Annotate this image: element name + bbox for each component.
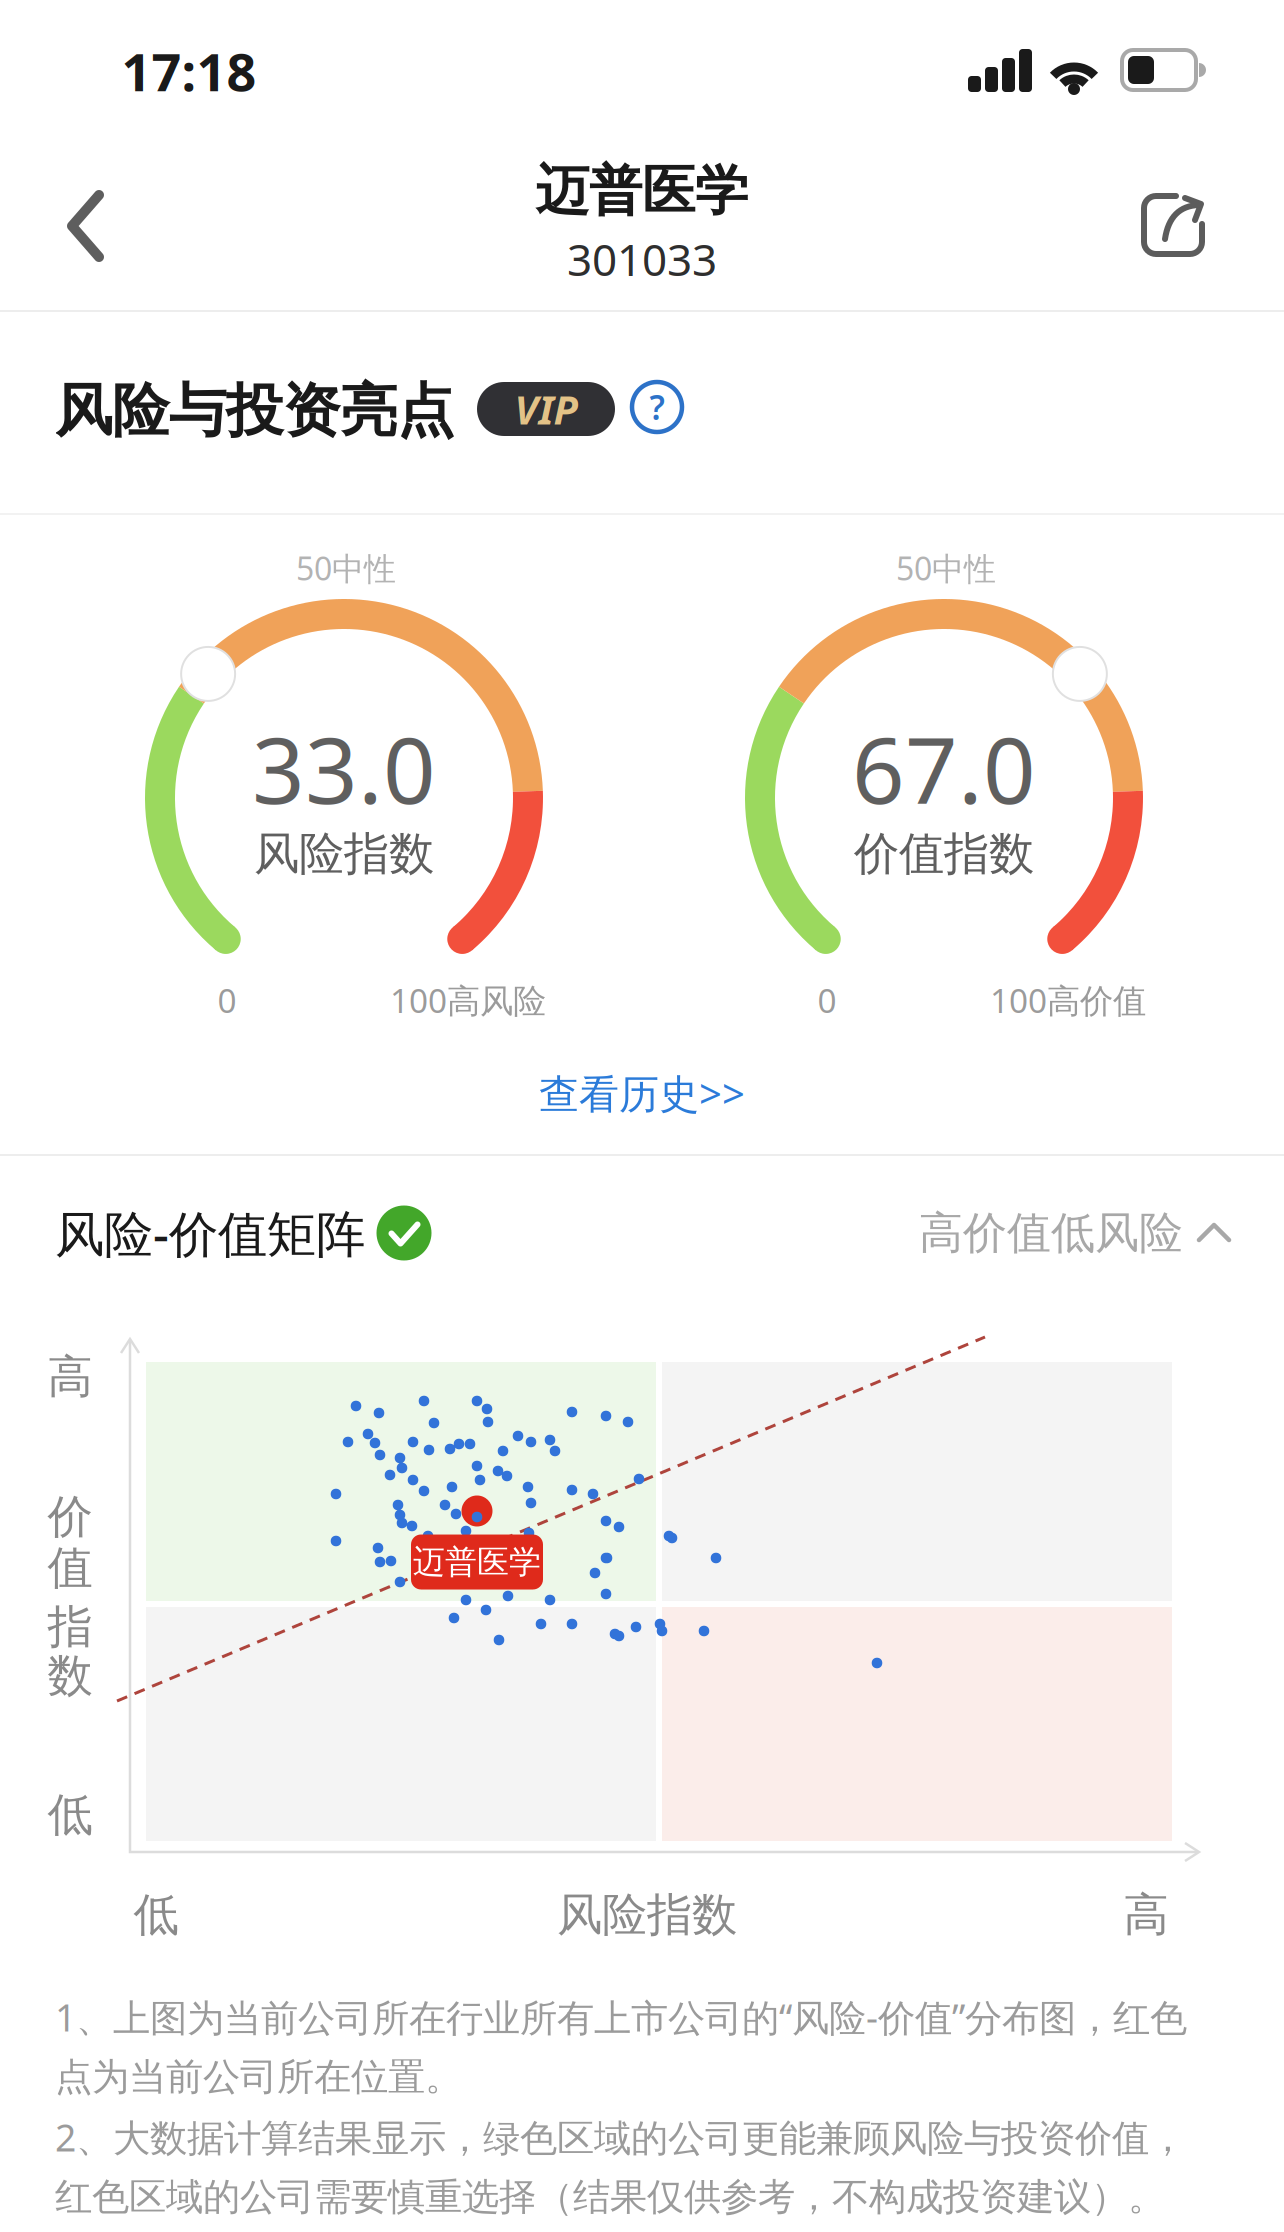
staticText: 数 [47, 1648, 92, 1704]
staticText: 高 [47, 1349, 92, 1405]
staticText: 2、大数据计算结果显示，绿色区域的公司更能兼顾风险与投资价值， [55, 2112, 1186, 2162]
staticText: 1、上图为当前公司所在行业所有上市公司的“风险-价值”分布图，红色 [55, 1992, 1187, 2042]
button[interactable]: 查看历史>> [539, 1066, 745, 1119]
staticText: 0 [217, 978, 236, 1022]
staticText: ? [649, 385, 664, 429]
staticText: 价值指数 [854, 826, 1034, 882]
staticText: 风险指数 [254, 826, 434, 882]
staticText: 迈普医学 [413, 1542, 541, 1582]
staticText: 高 [1123, 1887, 1168, 1943]
staticText: 17:18 [121, 36, 256, 106]
button[interactable]: Back [67, 191, 105, 261]
staticText: 价 [47, 1489, 92, 1545]
button[interactable]: Help [630, 380, 684, 434]
button[interactable]: 收起 [919, 1206, 1231, 1260]
staticText: 风险指数 [557, 1887, 737, 1943]
staticText: 33.0 [252, 707, 436, 829]
staticText: 100高风险 [390, 978, 546, 1022]
staticText: 50中性 [896, 547, 996, 589]
staticText: 高价值低风险 [919, 1206, 1183, 1260]
staticText: 迈普医学 [536, 158, 748, 224]
button[interactable]: VIP [477, 382, 615, 436]
button[interactable]: Share [1143, 192, 1209, 258]
staticText: 点为当前公司所在位置。 [55, 2054, 462, 2100]
staticText: 301033 [567, 230, 717, 288]
staticText: 指 [47, 1599, 92, 1655]
staticText: 值 [47, 1540, 92, 1596]
staticText: 100高价值 [990, 978, 1146, 1022]
staticText: 50中性 [296, 547, 396, 589]
staticText: 低 [133, 1887, 178, 1943]
staticText: 67.0 [852, 707, 1036, 829]
staticText: 风险与投资亮点 [55, 376, 454, 446]
staticText: 0 [817, 978, 836, 1022]
staticText: 查看历史>> [539, 1066, 745, 1119]
staticText: 红色区域的公司需要慎重选择（结果仅供参考，不构成投资建议）。 [55, 2174, 1165, 2220]
staticText: 风险-价值矩阵 [55, 1200, 365, 1266]
staticText: 低 [47, 1787, 92, 1843]
staticText: VIP [514, 382, 577, 435]
